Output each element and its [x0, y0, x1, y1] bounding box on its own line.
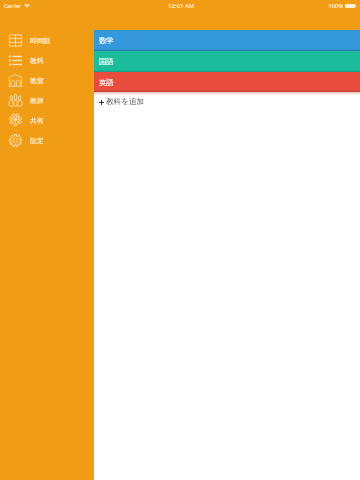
button[interactable]: 数学 [94, 30, 360, 51]
button[interactable]: Timetable [0, 30, 94, 50]
staticText: 教科を追加 [106, 97, 145, 107]
staticText: 教室 [30, 76, 44, 85]
button[interactable]: 英語 [94, 72, 360, 92]
staticText: 共有 [30, 116, 44, 125]
staticText: 時間割 [30, 36, 51, 45]
staticText: 国語 [99, 57, 114, 66]
button[interactable]: Teachers [0, 90, 94, 110]
button[interactable]: Classrooms [0, 70, 94, 90]
staticText: 100% [328, 2, 344, 10]
staticText: 教師 [30, 96, 44, 105]
button[interactable]: Settings [0, 130, 94, 150]
staticText: Carrier [4, 2, 22, 9]
button[interactable]: Share [0, 110, 94, 130]
staticText: 教科 [30, 56, 44, 65]
button[interactable]: 国語 [94, 51, 360, 72]
staticText: 英語 [99, 78, 114, 87]
button[interactable]: Subjects [0, 50, 94, 70]
staticText: 12:01 AM [168, 2, 195, 10]
staticText: 数学 [99, 36, 114, 45]
button[interactable]: 教科を追加 [94, 92, 360, 112]
staticText: 設定 [30, 136, 44, 145]
